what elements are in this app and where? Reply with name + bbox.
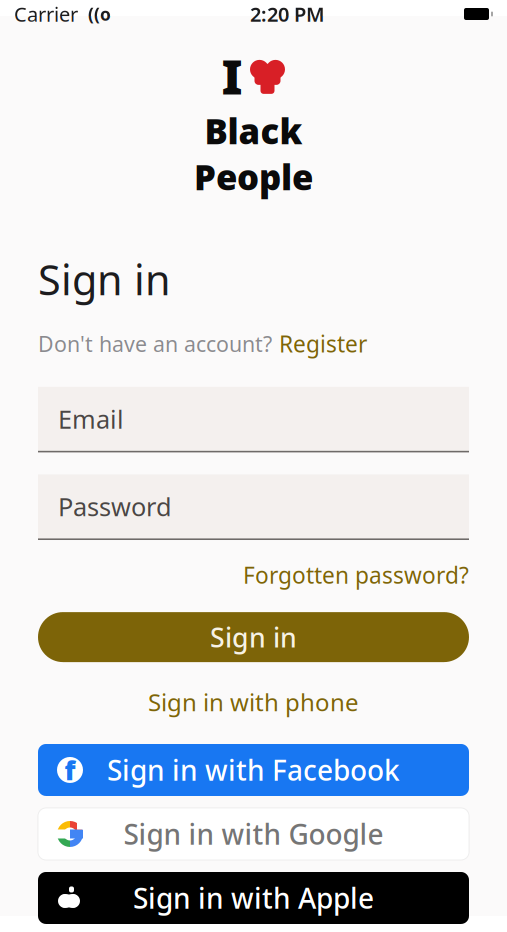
staticText: Forgotten password? [243,560,469,590]
staticText: Black [204,108,302,154]
staticText: Don't have an account? [38,330,272,358]
staticText: Email [58,402,124,436]
staticText: People [194,154,313,200]
button[interactable]: Sign in with Apple [38,872,469,924]
button[interactable]: Sign in with Google [38,808,469,860]
staticText: f [64,752,75,788]
staticText: 2:20 PM [250,1,325,27]
staticText: Sign in [210,619,297,655]
staticText: ((o [78,2,111,25]
staticText: Register [279,329,367,359]
staticText: Sign in with Facebook [107,751,400,789]
staticText: Sign in with phone [148,686,359,718]
staticText: Sign in with Apple [133,879,374,917]
staticText: Password [58,490,172,523]
button[interactable]: Sign in with phone [148,686,359,718]
staticText: Sign in [38,252,171,307]
button[interactable]: Forgotten password? [243,560,469,590]
button[interactable]: f [38,744,469,796]
button[interactable]: Sign in [38,612,469,662]
staticText: Sign in with Google [123,815,383,853]
button[interactable]: Register [279,329,367,359]
staticText: I [221,44,242,108]
staticText: Carrier [14,1,78,27]
